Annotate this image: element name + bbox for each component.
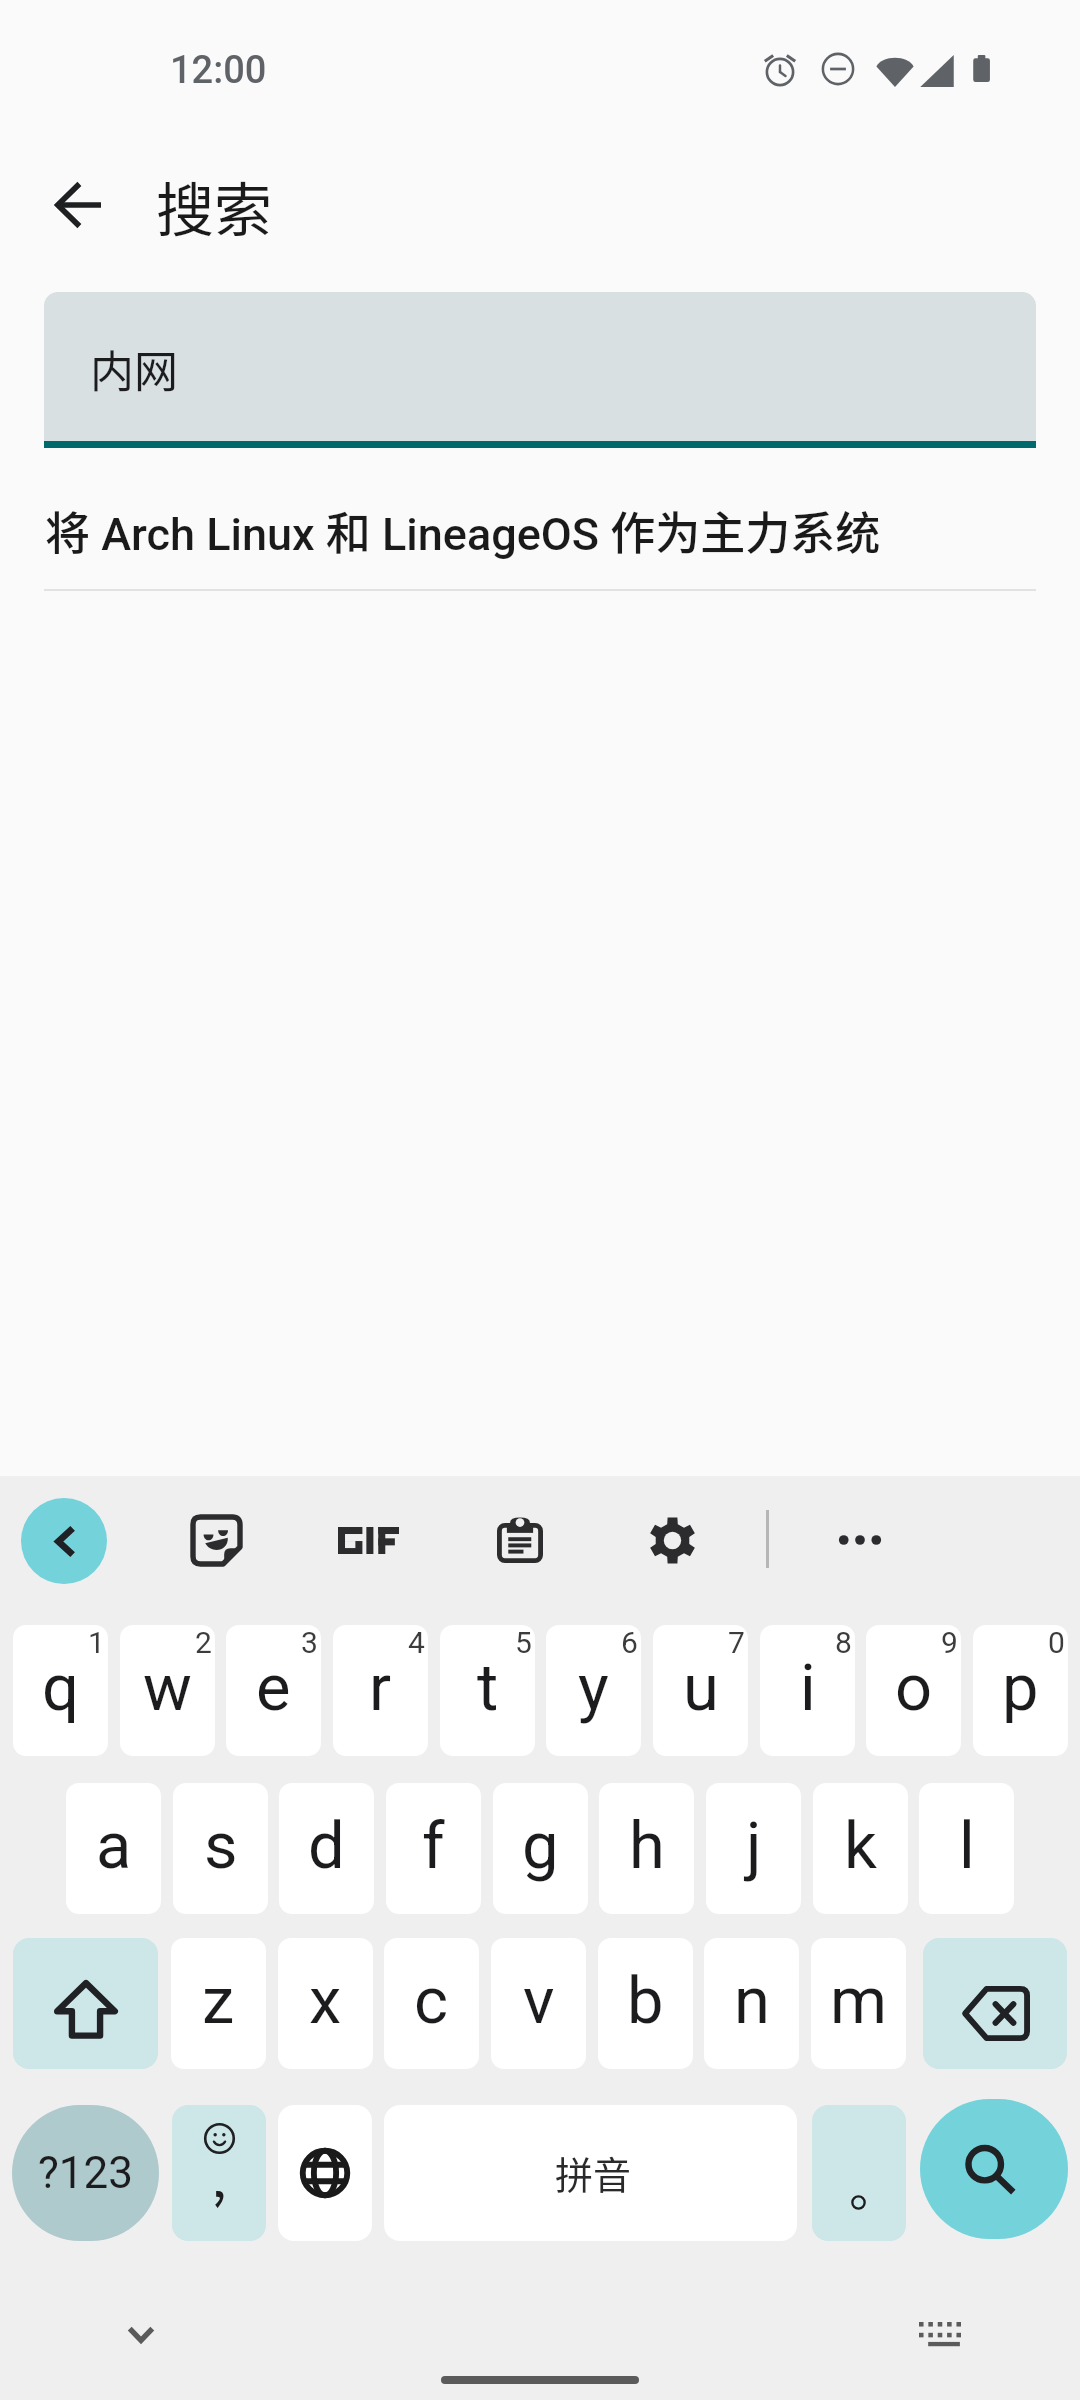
staticText: o [895,1650,933,1726]
staticText: 9 [941,1625,958,1660]
staticText: 4 [408,1625,425,1660]
button[interactable]: u [653,1625,748,1756]
staticText: 3 [301,1625,318,1660]
button[interactable]: o [866,1625,961,1756]
staticText: t [477,1650,499,1726]
staticText: y [578,1650,609,1726]
button[interactable]: k [813,1783,908,1914]
button[interactable]: 将 Arch Linux 和 LineageOS 作为主力系统 [0,470,1080,590]
button[interactable]: Shift [13,1938,158,2069]
staticText: v [523,1963,555,2039]
staticText: d [308,1808,345,1884]
staticText: 拼音 [555,2145,632,2200]
button[interactable]: g [493,1783,588,1914]
staticText: l [959,1808,975,1884]
button[interactable]: i [760,1625,855,1756]
staticText: 5 [515,1625,532,1660]
button[interactable]: Switch keyboard [899,2293,981,2375]
button[interactable]: n [704,1938,799,2069]
staticText: x [309,1963,342,2039]
button[interactable]: m [811,1938,906,2069]
staticText: c [414,1963,449,2039]
staticText: 6 [621,1625,638,1660]
button[interactable]: h [599,1783,694,1914]
button[interactable]: q [13,1625,108,1756]
staticText: i [800,1650,816,1726]
button[interactable]: l [919,1783,1014,1914]
staticText: 搜索 [156,164,273,248]
staticText: 7 [728,1625,745,1660]
button[interactable]: c [384,1938,479,2069]
button[interactable]: b [598,1938,693,2069]
button[interactable]: 内网 [44,292,1036,441]
staticText: j [746,1808,762,1884]
button[interactable]: t [440,1625,535,1756]
button[interactable]: a [66,1783,161,1914]
button[interactable]: r [333,1625,428,1756]
staticText: f [422,1808,445,1884]
button[interactable]: x [278,1938,373,2069]
button[interactable]: Search [920,2099,1068,2239]
staticText: b [627,1963,664,2039]
staticText: k [844,1808,877,1884]
staticText: s [204,1808,238,1884]
button[interactable]: Settings [629,1500,715,1580]
staticText: 2 [195,1625,212,1660]
staticText: g [522,1808,559,1884]
button[interactable]: z [171,1938,266,2069]
button[interactable]: y [546,1625,641,1756]
staticText: n [734,1963,770,2039]
staticText: z [202,1963,235,2039]
button[interactable]: Previous [21,1498,107,1584]
button[interactable]: d [279,1783,374,1914]
button[interactable]: Back [29,157,125,253]
button[interactable]: 拼音 [384,2105,797,2241]
staticText: u [683,1650,719,1726]
staticText: w [143,1650,192,1726]
button[interactable]: Clipboard [477,1500,563,1580]
button[interactable]: j [706,1783,801,1914]
button[interactable]: Change keyboard language [278,2105,372,2241]
button[interactable]: s [173,1783,268,1914]
button[interactable]: Emoji and comma [172,2105,266,2241]
button[interactable]: Hide keyboard [100,2293,182,2375]
staticText: 12:00 [170,48,267,93]
button[interactable]: e [226,1625,321,1756]
staticText: ?123 [38,2147,133,2199]
button[interactable]: w [120,1625,215,1756]
staticText: 将 Arch Linux 和 LineageOS 作为主力系统 [45,498,881,563]
button[interactable]: More options [820,1500,900,1580]
button[interactable]: GIF [325,1500,411,1580]
button[interactable]: v [491,1938,586,2069]
staticText: m [830,1963,888,2039]
staticText: h [629,1808,665,1884]
button[interactable]: p [973,1625,1068,1756]
button[interactable]: f [386,1783,481,1914]
staticText: r [369,1650,392,1726]
staticText: 内网 [90,337,178,401]
staticText: 1 [88,1625,105,1660]
button[interactable]: Stickers [173,1500,259,1580]
staticText: q [42,1650,79,1726]
button[interactable]: ?123 [12,2105,159,2241]
staticText: e [256,1650,291,1726]
staticText: 8 [835,1625,852,1660]
button[interactable]: Period [812,2105,906,2241]
staticText: p [1002,1650,1039,1726]
staticText: 0 [1048,1625,1065,1660]
button[interactable]: Backspace [923,1938,1067,2069]
staticText: a [96,1808,132,1884]
